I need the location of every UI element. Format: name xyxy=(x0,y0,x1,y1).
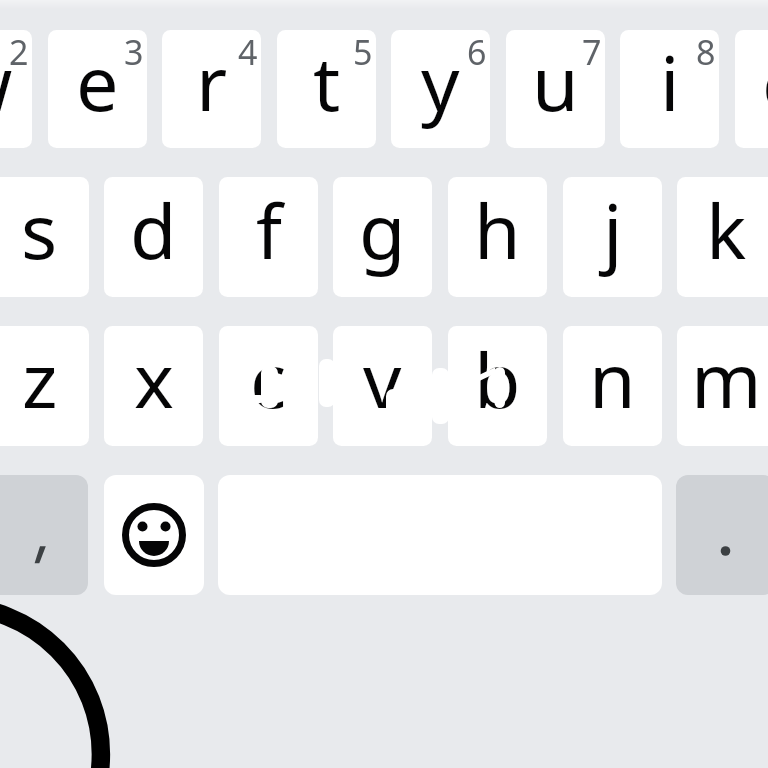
staticText: 6 xyxy=(467,30,487,75)
staticText: e xyxy=(76,30,119,133)
staticText: d xyxy=(130,178,177,281)
staticText: 5 xyxy=(353,30,373,75)
button[interactable]: g xyxy=(333,177,432,297)
staticText: k xyxy=(706,178,747,281)
button[interactable]: x xyxy=(104,326,203,446)
staticText: y xyxy=(421,30,460,133)
button[interactable]: m xyxy=(677,326,768,446)
button[interactable]: b xyxy=(448,326,547,446)
button[interactable]: Period xyxy=(676,475,768,595)
button[interactable]: e xyxy=(48,30,147,148)
staticText: t xyxy=(313,30,341,133)
button[interactable]: j xyxy=(563,177,662,297)
button[interactable]: w xyxy=(0,30,32,148)
staticText: j xyxy=(603,178,623,281)
button[interactable]: Comma xyxy=(0,475,88,595)
button[interactable]: s xyxy=(0,177,89,297)
staticText: x xyxy=(134,327,174,430)
staticText: g xyxy=(359,178,406,281)
button[interactable]: h xyxy=(448,177,547,297)
staticText: c xyxy=(250,327,287,430)
staticText: b xyxy=(474,327,521,430)
staticText: n xyxy=(589,327,636,430)
staticText: s xyxy=(21,178,58,281)
staticText: f xyxy=(256,178,282,281)
staticText: r xyxy=(196,30,228,133)
button[interactable]: r xyxy=(162,30,261,148)
staticText: 4 xyxy=(238,30,258,75)
staticText: 8 xyxy=(696,30,716,75)
button[interactable]: c xyxy=(219,326,318,446)
button[interactable]: y xyxy=(391,30,490,148)
button[interactable]: f xyxy=(219,177,318,297)
button[interactable]: i xyxy=(620,30,719,148)
staticText: h xyxy=(474,178,521,281)
button[interactable]: n xyxy=(563,326,662,446)
staticText: 3 xyxy=(124,30,144,75)
staticText: i xyxy=(660,30,680,133)
staticText: m xyxy=(691,327,762,430)
button[interactable]: Emoji xyxy=(104,475,204,595)
staticText: o xyxy=(762,30,768,133)
staticText: v xyxy=(363,327,402,430)
button[interactable]: d xyxy=(104,177,203,297)
button[interactable]: k xyxy=(677,177,768,297)
button[interactable]: u xyxy=(506,30,605,148)
staticText: z xyxy=(22,327,58,430)
staticText: 2 xyxy=(9,30,29,75)
button[interactable]: t xyxy=(277,30,376,148)
staticText: u xyxy=(532,30,579,133)
button[interactable]: z xyxy=(0,326,89,446)
staticText: w xyxy=(0,30,13,133)
button[interactable]: o xyxy=(735,30,768,148)
button[interactable]: v xyxy=(333,326,432,446)
staticText: 7 xyxy=(582,30,602,75)
